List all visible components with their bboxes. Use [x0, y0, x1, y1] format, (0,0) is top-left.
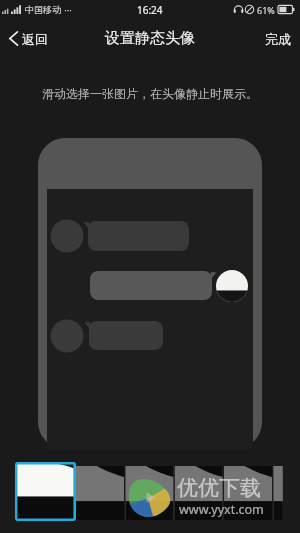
button[interactable]: Selected photo: [0, 464, 59, 520]
staticText: 16:24: [137, 3, 163, 17]
button[interactable]: Photo 5: [206, 464, 255, 520]
staticText: 完成: [265, 31, 291, 47]
staticText: 优优下载: [177, 475, 261, 501]
button[interactable]: 返回: [0, 19, 58, 58]
staticText: 设置静态头像: [105, 29, 195, 48]
button[interactable]: Photo 4: [157, 464, 206, 520]
staticText: 滑动选择一张图片，在头像静止时展示。: [42, 86, 258, 101]
staticText: ···: [62, 4, 72, 16]
button[interactable]: 完成: [256, 19, 300, 58]
staticText: www.yyxt.com: [179, 501, 264, 518]
staticText: 中国移动: [25, 4, 61, 15]
staticText: 61%: [257, 4, 275, 16]
staticText: 返回: [22, 31, 48, 47]
button[interactable]: Photo 3: [108, 464, 157, 520]
button[interactable]: Photo 2: [59, 464, 108, 520]
